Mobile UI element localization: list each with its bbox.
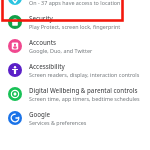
- staticText: Screen time, app timers, bedtime schedul…: [29, 95, 140, 102]
- staticText: On - 37 apps have access to location: [29, 0, 121, 6]
- button[interactable]: Accessibility: [0, 58, 150, 82]
- staticText: Accessibility: [29, 62, 65, 70]
- button[interactable]: Accounts: [0, 34, 150, 58]
- staticText: Screen readers, display, interaction con…: [29, 71, 140, 78]
- button[interactable]: Security: [0, 10, 150, 34]
- button[interactable]: Digital Wellbeing & parental controls: [0, 82, 150, 106]
- staticText: Digital Wellbeing & parental controls: [29, 86, 138, 94]
- staticText: Google: [29, 110, 51, 118]
- staticText: Security: [29, 14, 53, 22]
- staticText: Play Protect, screen lock, fingerprint: [29, 23, 121, 30]
- staticText: Google, Duo, and Twitter: [29, 47, 93, 54]
- staticText: Accounts: [29, 38, 57, 46]
- button[interactable]: Google: [0, 106, 150, 130]
- staticText: Services & preferences: [29, 119, 87, 126]
- button[interactable]: Location: [0, 0, 150, 10]
